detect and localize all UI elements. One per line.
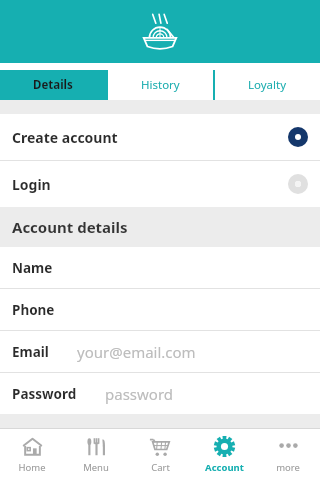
button[interactable]: Loyalty <box>215 70 320 100</box>
staticText: Create account <box>12 128 118 147</box>
staticText: Password <box>12 385 77 403</box>
button[interactable]: Email <box>0 331 320 372</box>
button[interactable]: History <box>108 70 213 100</box>
button[interactable]: Account <box>192 429 256 480</box>
button[interactable]: Login <box>0 161 320 207</box>
button[interactable]: Phone <box>0 289 320 330</box>
staticText: more <box>276 461 300 474</box>
staticText: Account <box>205 461 244 474</box>
staticText: Email <box>12 343 49 361</box>
staticText: Phone <box>12 301 55 319</box>
button[interactable]: Cart <box>128 429 192 480</box>
staticText: your@email.com <box>77 342 196 362</box>
staticText: Home <box>18 461 46 474</box>
button[interactable]: Details <box>0 70 106 100</box>
button[interactable]: Name <box>0 247 320 288</box>
button[interactable]: Home <box>0 429 64 480</box>
staticText: History <box>141 77 180 93</box>
staticText: Menu <box>83 461 109 474</box>
button[interactable]: Create account <box>0 114 320 160</box>
staticText: Login <box>12 175 51 194</box>
button[interactable]: Menu <box>64 429 128 480</box>
staticText: password <box>105 384 173 404</box>
staticText: Account details <box>12 217 128 237</box>
staticText: Loyalty <box>248 77 287 93</box>
button[interactable]: Password <box>0 373 320 414</box>
button[interactable]: more <box>256 429 320 480</box>
staticText: Name <box>12 259 53 277</box>
staticText: Details <box>33 77 73 93</box>
staticText: Cart <box>151 461 170 474</box>
